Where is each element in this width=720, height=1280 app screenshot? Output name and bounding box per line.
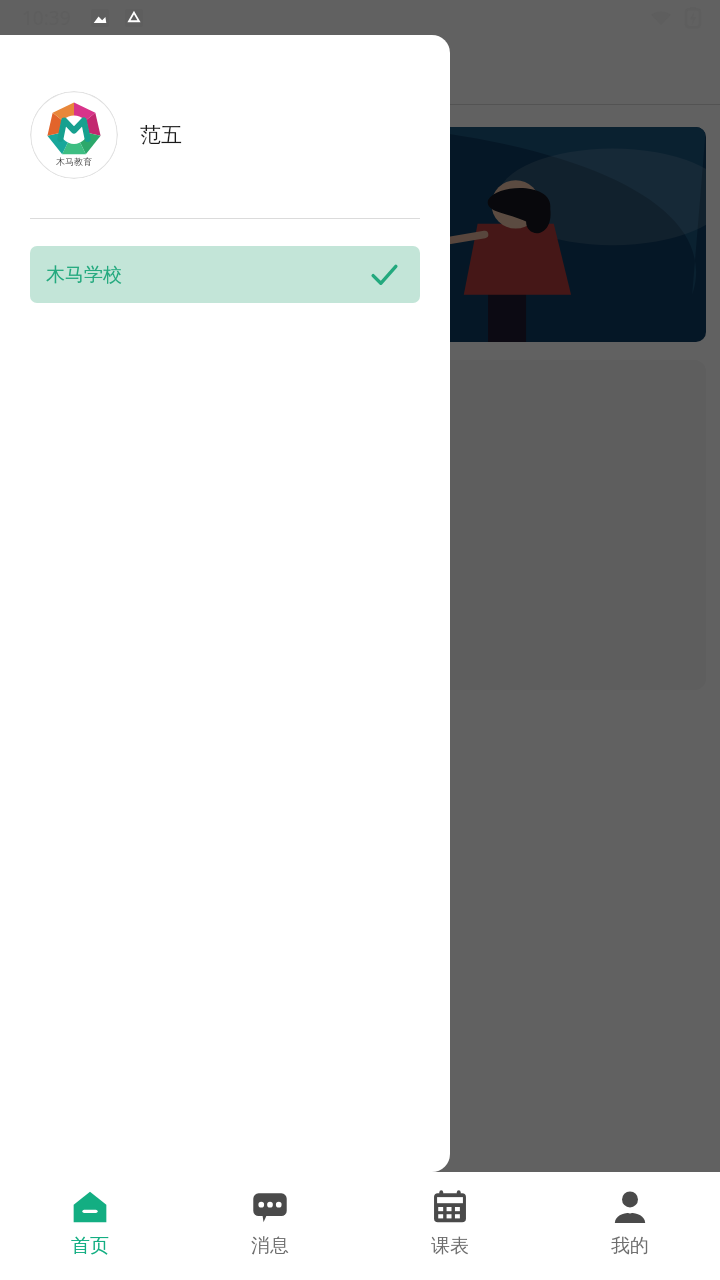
button[interactable]: 我的 — [540, 1172, 720, 1280]
staticText: 木马学校 — [46, 263, 122, 287]
button[interactable]: 首页 — [0, 1172, 180, 1280]
staticText: 首页 — [71, 1234, 109, 1258]
other: 我的 — [611, 1188, 649, 1226]
staticText: 木马教育 — [56, 156, 92, 167]
other: 消息 — [251, 1188, 289, 1226]
staticText: 我的 — [611, 1234, 649, 1258]
staticText: 消息 — [251, 1234, 289, 1258]
button[interactable]: 木马教育 — [0, 85, 450, 185]
button[interactable]: 课表 — [360, 1172, 540, 1280]
staticText: 范五 — [140, 122, 182, 148]
staticText: 课表 — [431, 1234, 469, 1258]
other: 课表 — [431, 1188, 469, 1226]
button[interactable]: 木马学校 — [30, 246, 420, 303]
other: 首页 — [71, 1188, 109, 1226]
button[interactable]: 消息 — [180, 1172, 360, 1280]
